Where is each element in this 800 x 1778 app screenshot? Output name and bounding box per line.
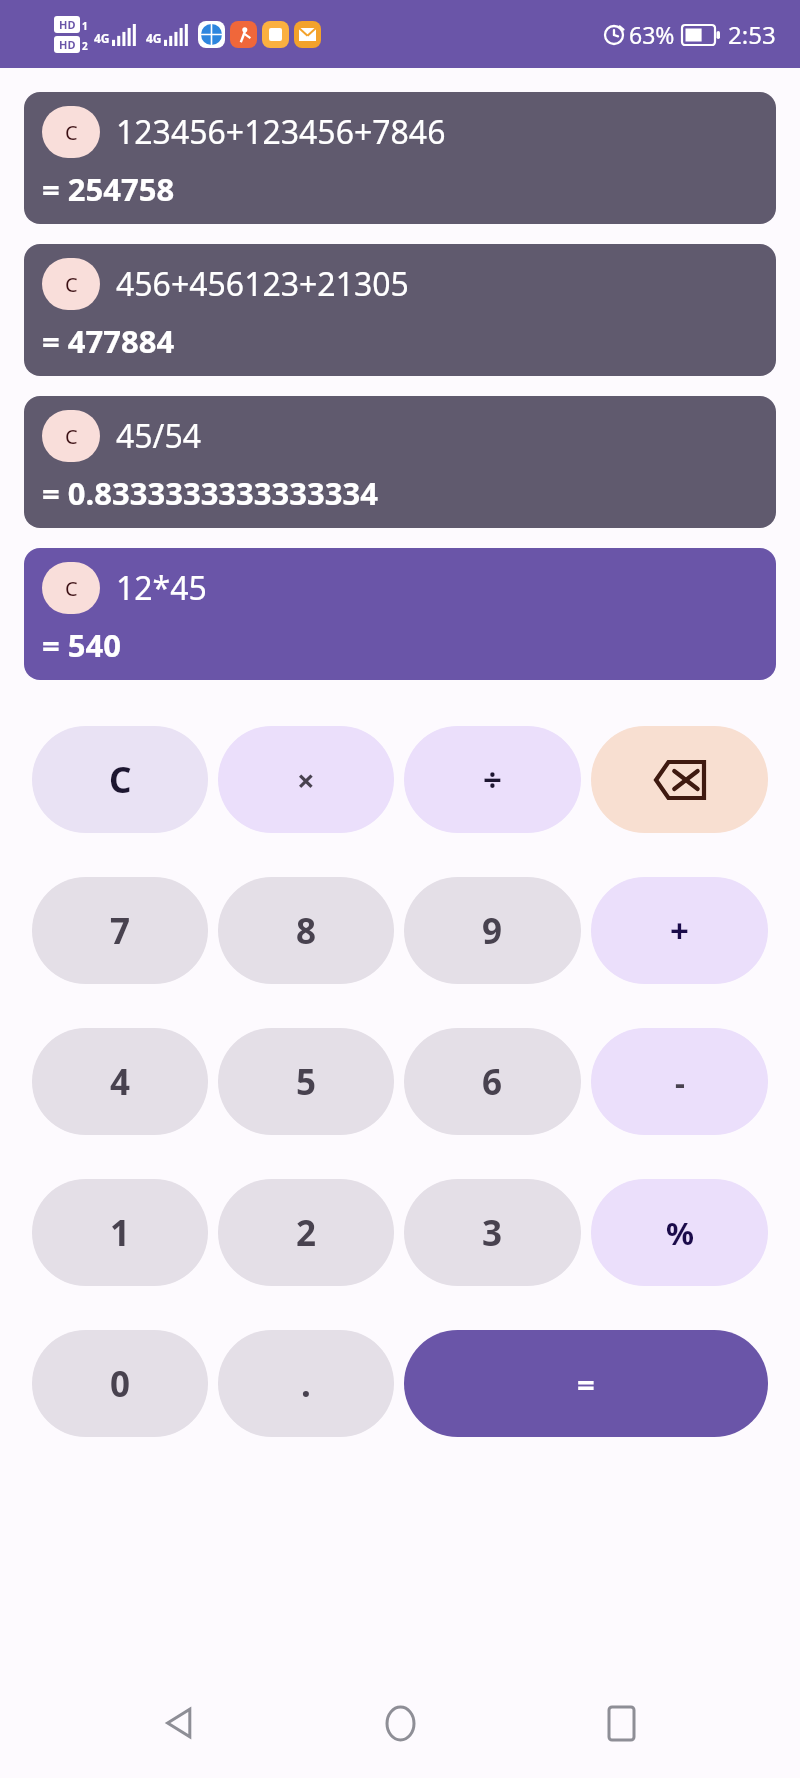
button[interactable]: Recents <box>579 1681 663 1765</box>
staticText: 7 <box>110 907 131 955</box>
staticText: C <box>65 423 78 450</box>
button[interactable]: C <box>24 244 776 376</box>
staticText: + <box>670 908 689 953</box>
button[interactable]: × <box>218 726 394 833</box>
staticText: - <box>675 1061 685 1103</box>
button[interactable]: = <box>404 1330 768 1437</box>
button[interactable]: C <box>32 726 208 833</box>
button[interactable]: Home <box>358 1681 442 1765</box>
staticText: 4G <box>94 30 110 46</box>
button[interactable]: 0 <box>32 1330 208 1437</box>
staticText: = 477884 <box>42 320 175 362</box>
staticText: % <box>666 1212 694 1254</box>
staticText: 8 <box>296 907 317 955</box>
staticText: 1 <box>110 1209 131 1257</box>
button[interactable]: C <box>24 548 776 680</box>
button[interactable]: - <box>591 1028 768 1135</box>
staticText: = 0.8333333333333334 <box>42 472 378 514</box>
staticText: = 540 <box>42 624 121 666</box>
staticText: 6 <box>482 1058 503 1106</box>
staticText: 456+456123+21305 <box>116 262 409 306</box>
staticText: 45/54 <box>116 414 202 458</box>
staticText: HD <box>59 17 76 32</box>
staticText: 0 <box>110 1360 131 1408</box>
staticText: HD <box>59 37 76 52</box>
button[interactable]: C <box>24 396 776 528</box>
staticText: 3 <box>482 1209 503 1257</box>
button[interactable]: . <box>218 1330 394 1437</box>
button[interactable]: ÷ <box>404 726 581 833</box>
staticText: 1 <box>82 19 88 33</box>
staticText: 5 <box>296 1058 317 1106</box>
button[interactable]: 5 <box>218 1028 394 1135</box>
staticText: = <box>577 1363 595 1405</box>
staticText: = 254758 <box>42 168 175 210</box>
button[interactable]: 9 <box>404 877 581 984</box>
button[interactable]: 7 <box>32 877 208 984</box>
button[interactable]: 2 <box>218 1179 394 1286</box>
button[interactable]: 4 <box>32 1028 208 1135</box>
button[interactable]: + <box>591 877 768 984</box>
staticText: ÷ <box>483 757 502 802</box>
staticText: 12*45 <box>116 566 207 610</box>
staticText: C <box>65 271 78 298</box>
button[interactable]: Back <box>137 1681 221 1765</box>
staticText: . <box>301 1360 311 1408</box>
button[interactable]: 1 <box>32 1179 208 1286</box>
staticText: 2:53 <box>728 18 776 51</box>
button[interactable]: 6 <box>404 1028 581 1135</box>
staticText: 2 <box>82 39 88 53</box>
staticText: 4 <box>110 1058 131 1106</box>
staticText: 123456+123456+7846 <box>116 110 446 154</box>
staticText: C <box>65 575 78 602</box>
button[interactable]: 3 <box>404 1179 581 1286</box>
button[interactable]: 8 <box>218 877 394 984</box>
button[interactable]: C <box>24 92 776 224</box>
staticText: 63% <box>629 19 675 50</box>
staticText: 2 <box>296 1209 317 1257</box>
staticText: C <box>65 119 78 146</box>
staticText: 9 <box>482 907 503 955</box>
staticText: × <box>297 759 315 801</box>
staticText: 4G <box>146 30 162 46</box>
button[interactable]: % <box>591 1179 768 1286</box>
button[interactable]: Backspace <box>591 726 768 833</box>
staticText: C <box>109 756 132 804</box>
